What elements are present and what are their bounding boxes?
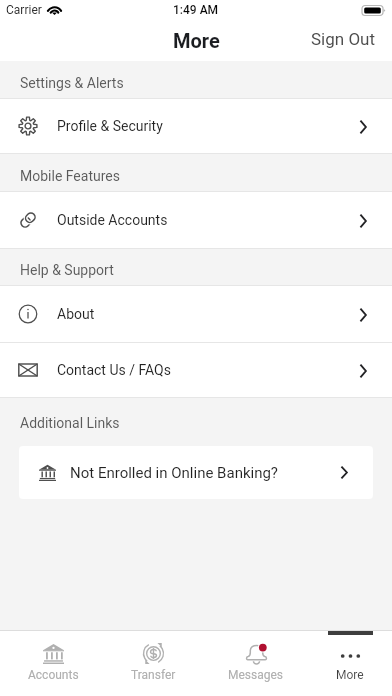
staticText: Help & Support (20, 262, 114, 278)
button[interactable]: Messages (211, 631, 301, 696)
staticText: Messages (228, 668, 284, 682)
staticText: Mobile Features (20, 168, 120, 184)
staticText: 1:49 AM (173, 3, 219, 17)
staticText: Accounts (28, 668, 79, 682)
staticText: Additional Links (20, 415, 120, 431)
staticText: Profile & Security (57, 118, 163, 134)
other: Messages (246, 643, 267, 664)
button[interactable]: Accounts (8, 631, 98, 696)
button[interactable]: Contact Us / FAQs (0, 343, 392, 397)
staticText: Settings & Alerts (20, 75, 124, 91)
staticText: Carrier (6, 3, 42, 17)
staticText: Not Enrolled in Online Banking? (70, 464, 278, 482)
button[interactable]: More (305, 631, 392, 696)
other: More (340, 643, 361, 664)
button[interactable]: About (0, 286, 392, 342)
button[interactable]: Transfer (108, 631, 198, 696)
staticText: Transfer (131, 668, 176, 682)
staticText: About (57, 306, 95, 322)
staticText: Outside Accounts (57, 212, 168, 228)
button[interactable]: Profile & Security (0, 99, 392, 153)
button[interactable]: Not Enrolled in Online Banking? (19, 446, 373, 499)
button[interactable]: Outside Accounts (0, 192, 392, 248)
staticText: Sign Out (311, 29, 376, 49)
staticText: Contact Us / FAQs (57, 362, 171, 378)
other: Transfer (143, 643, 164, 664)
staticText: More (173, 29, 220, 52)
staticText: More (336, 668, 364, 682)
button[interactable]: Sign Out (297, 21, 392, 57)
